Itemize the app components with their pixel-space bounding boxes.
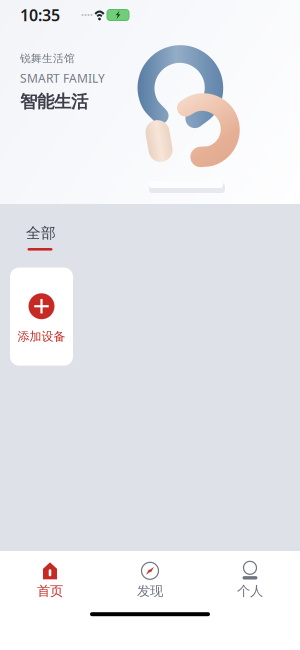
staticText: 首页 [37, 583, 63, 599]
button[interactable]: 个人 [200, 557, 300, 604]
staticText: 发现 [137, 583, 163, 599]
staticText: 10:35 [20, 4, 60, 26]
staticText: 添加设备 [17, 329, 65, 344]
button[interactable]: 首页 [0, 557, 100, 604]
staticText: SMART FAMILY [20, 70, 105, 86]
button[interactable]: 发现 [100, 557, 200, 604]
staticText: 个人 [237, 583, 263, 599]
button[interactable]: 全部 [0, 204, 56, 251]
button[interactable]: 添加设备 [10, 268, 73, 366]
staticText: 智能生活 [20, 91, 88, 112]
staticText: 锐舞生活馆 [20, 52, 75, 65]
staticText: 全部 [26, 224, 56, 242]
